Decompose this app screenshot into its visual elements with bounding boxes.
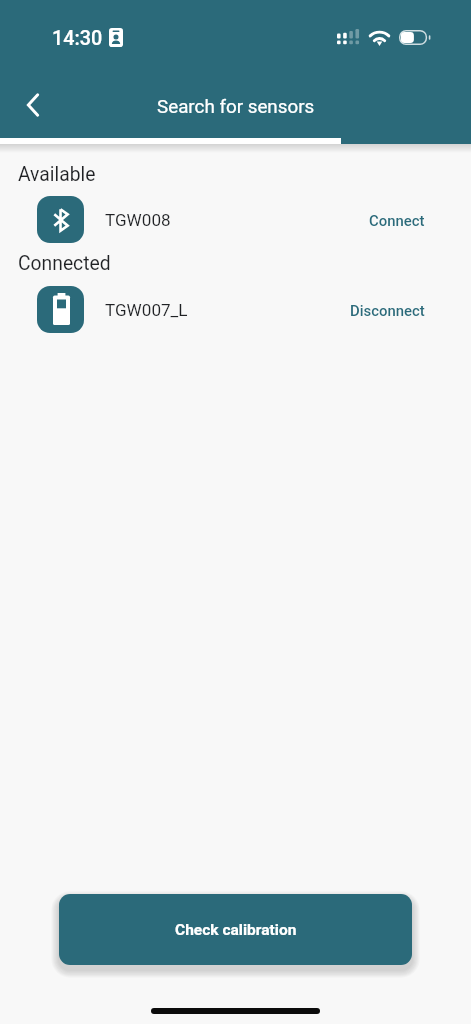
staticText: TGW007_L xyxy=(105,300,188,320)
button[interactable]: Connect xyxy=(359,198,435,242)
staticText: Connected xyxy=(18,252,111,275)
button[interactable]: TGW008 xyxy=(0,196,471,243)
staticText: Available xyxy=(18,163,96,186)
staticText: TGW008 xyxy=(105,210,171,230)
button[interactable]: Disconnect xyxy=(340,288,435,332)
button[interactable]: TGW007_L xyxy=(0,286,471,333)
button[interactable]: Back xyxy=(11,83,55,127)
staticText: Disconnect xyxy=(350,302,425,319)
staticText: Search for sensors xyxy=(157,96,315,118)
button[interactable]: Check calibration xyxy=(59,894,412,965)
staticText: Connect xyxy=(369,212,425,229)
staticText: Check calibration xyxy=(175,921,297,939)
staticText: 14:30 xyxy=(52,27,103,50)
